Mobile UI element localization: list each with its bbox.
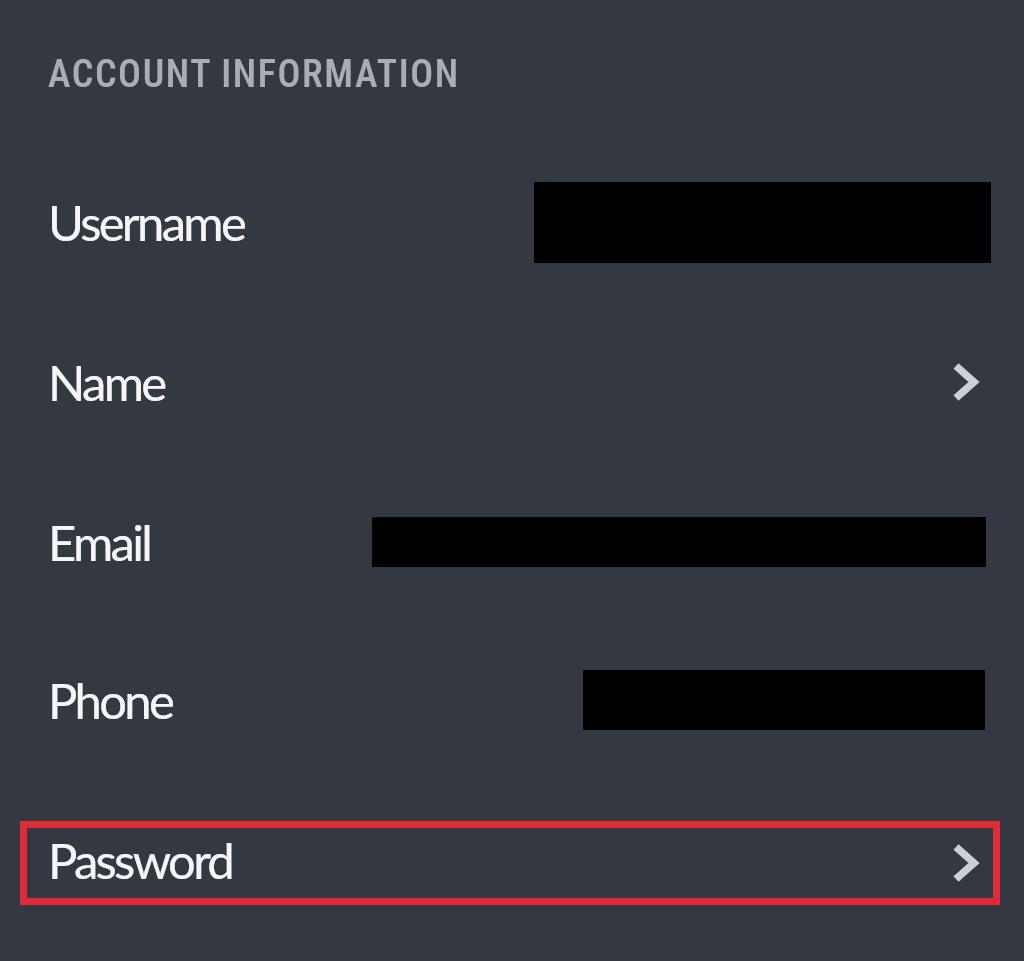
staticText: Username <box>48 193 245 252</box>
button[interactable]: Name <box>20 340 1000 424</box>
button[interactable]: Email <box>20 500 1000 584</box>
staticText: Email <box>48 513 151 572</box>
staticText: Phone <box>48 671 173 730</box>
staticText: Name <box>48 353 165 412</box>
button[interactable]: Username <box>20 180 1000 264</box>
staticText: Password <box>48 831 233 890</box>
button[interactable]: Phone <box>20 658 1000 742</box>
button[interactable]: Password <box>20 821 1000 905</box>
staticText: ACCOUNT INFORMATION <box>48 52 460 97</box>
